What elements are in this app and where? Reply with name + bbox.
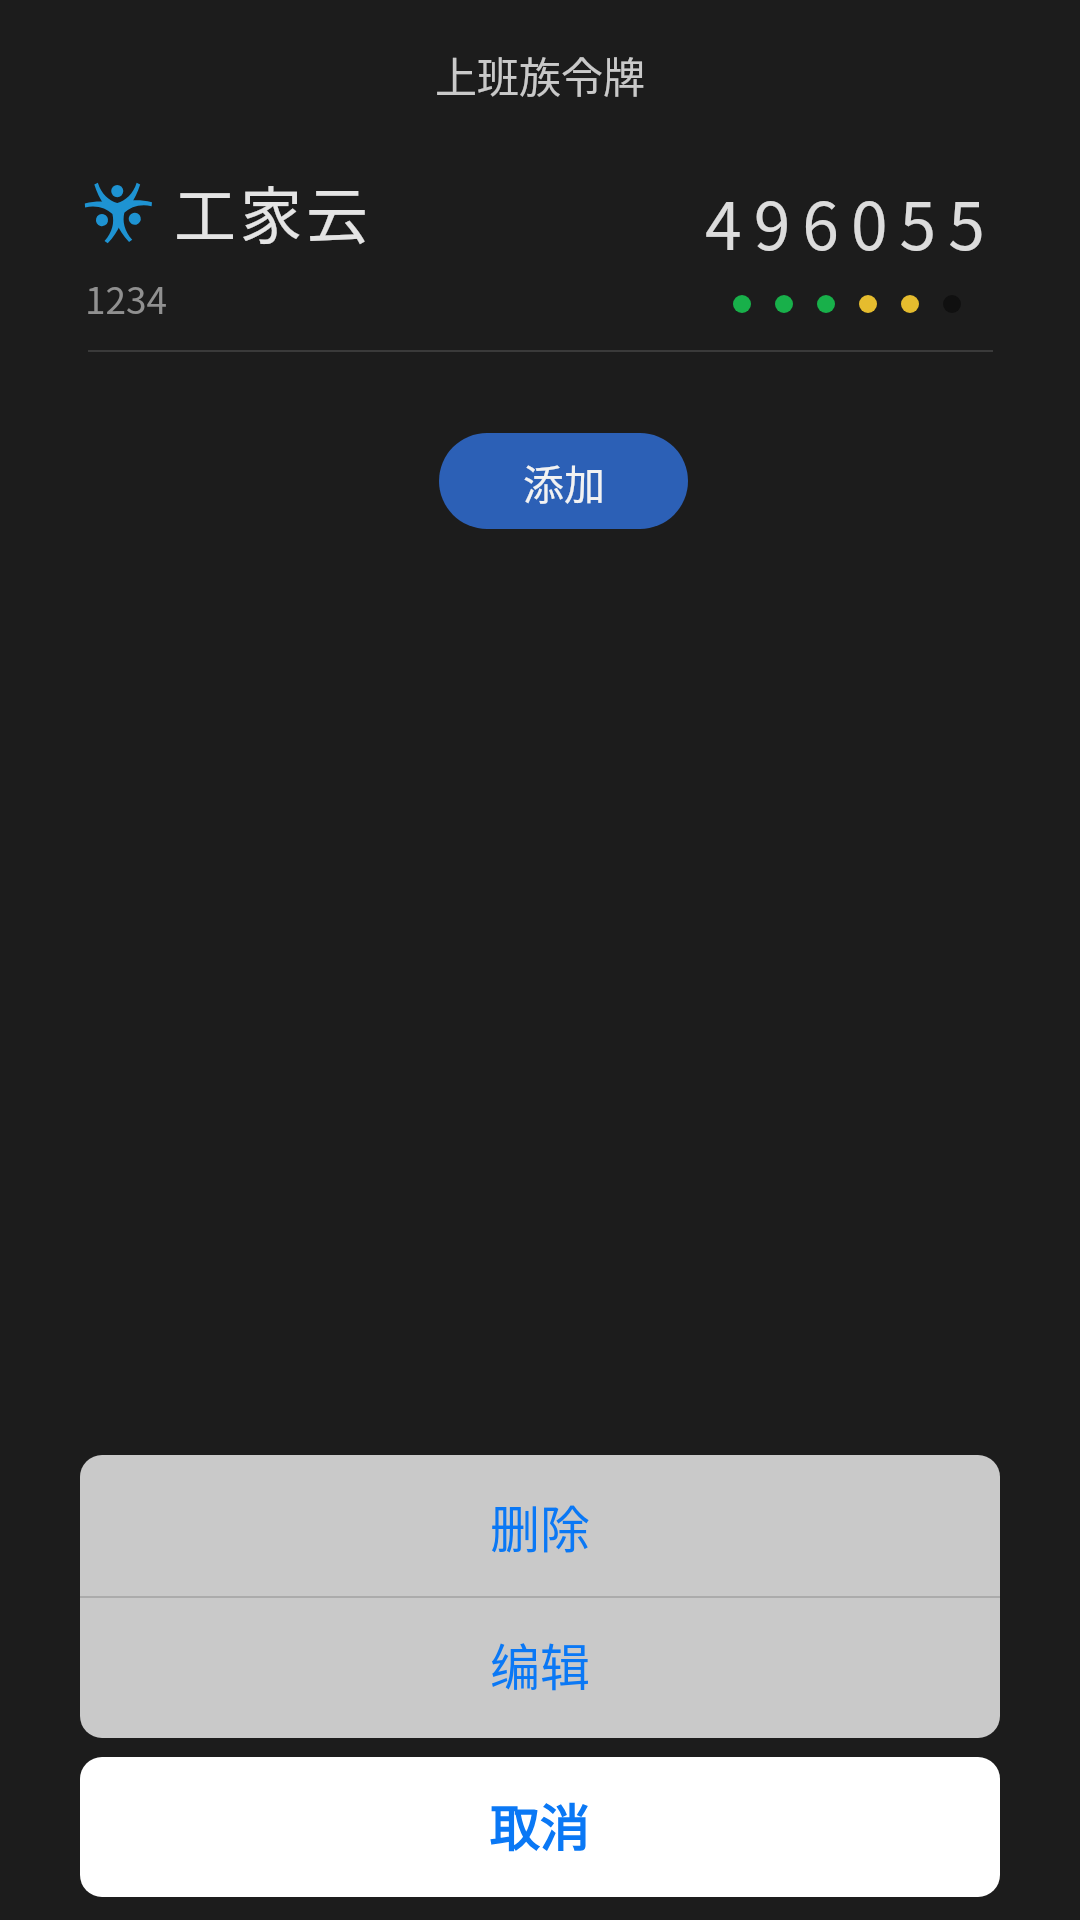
button[interactable]: 删除 bbox=[80, 1455, 1000, 1596]
staticText: 添加 bbox=[523, 452, 605, 511]
staticText: 删除 bbox=[490, 1490, 590, 1562]
button[interactable]: 取消 bbox=[80, 1757, 1000, 1897]
button[interactable]: 工家云 token icon bbox=[76, 160, 1000, 350]
staticText: 工家云 bbox=[174, 167, 373, 255]
staticText: 上班族令牌 bbox=[435, 44, 646, 105]
other: 工家云 token icon bbox=[76, 168, 160, 252]
staticText: 取消 bbox=[490, 1788, 590, 1860]
button[interactable]: 编辑 bbox=[80, 1598, 1000, 1738]
staticText: 编辑 bbox=[490, 1628, 590, 1700]
staticText: 496055 bbox=[705, 173, 997, 263]
other: Code validity bbox=[733, 295, 961, 313]
button[interactable]: 添加 bbox=[439, 433, 688, 529]
staticText: 1234 bbox=[85, 271, 168, 321]
